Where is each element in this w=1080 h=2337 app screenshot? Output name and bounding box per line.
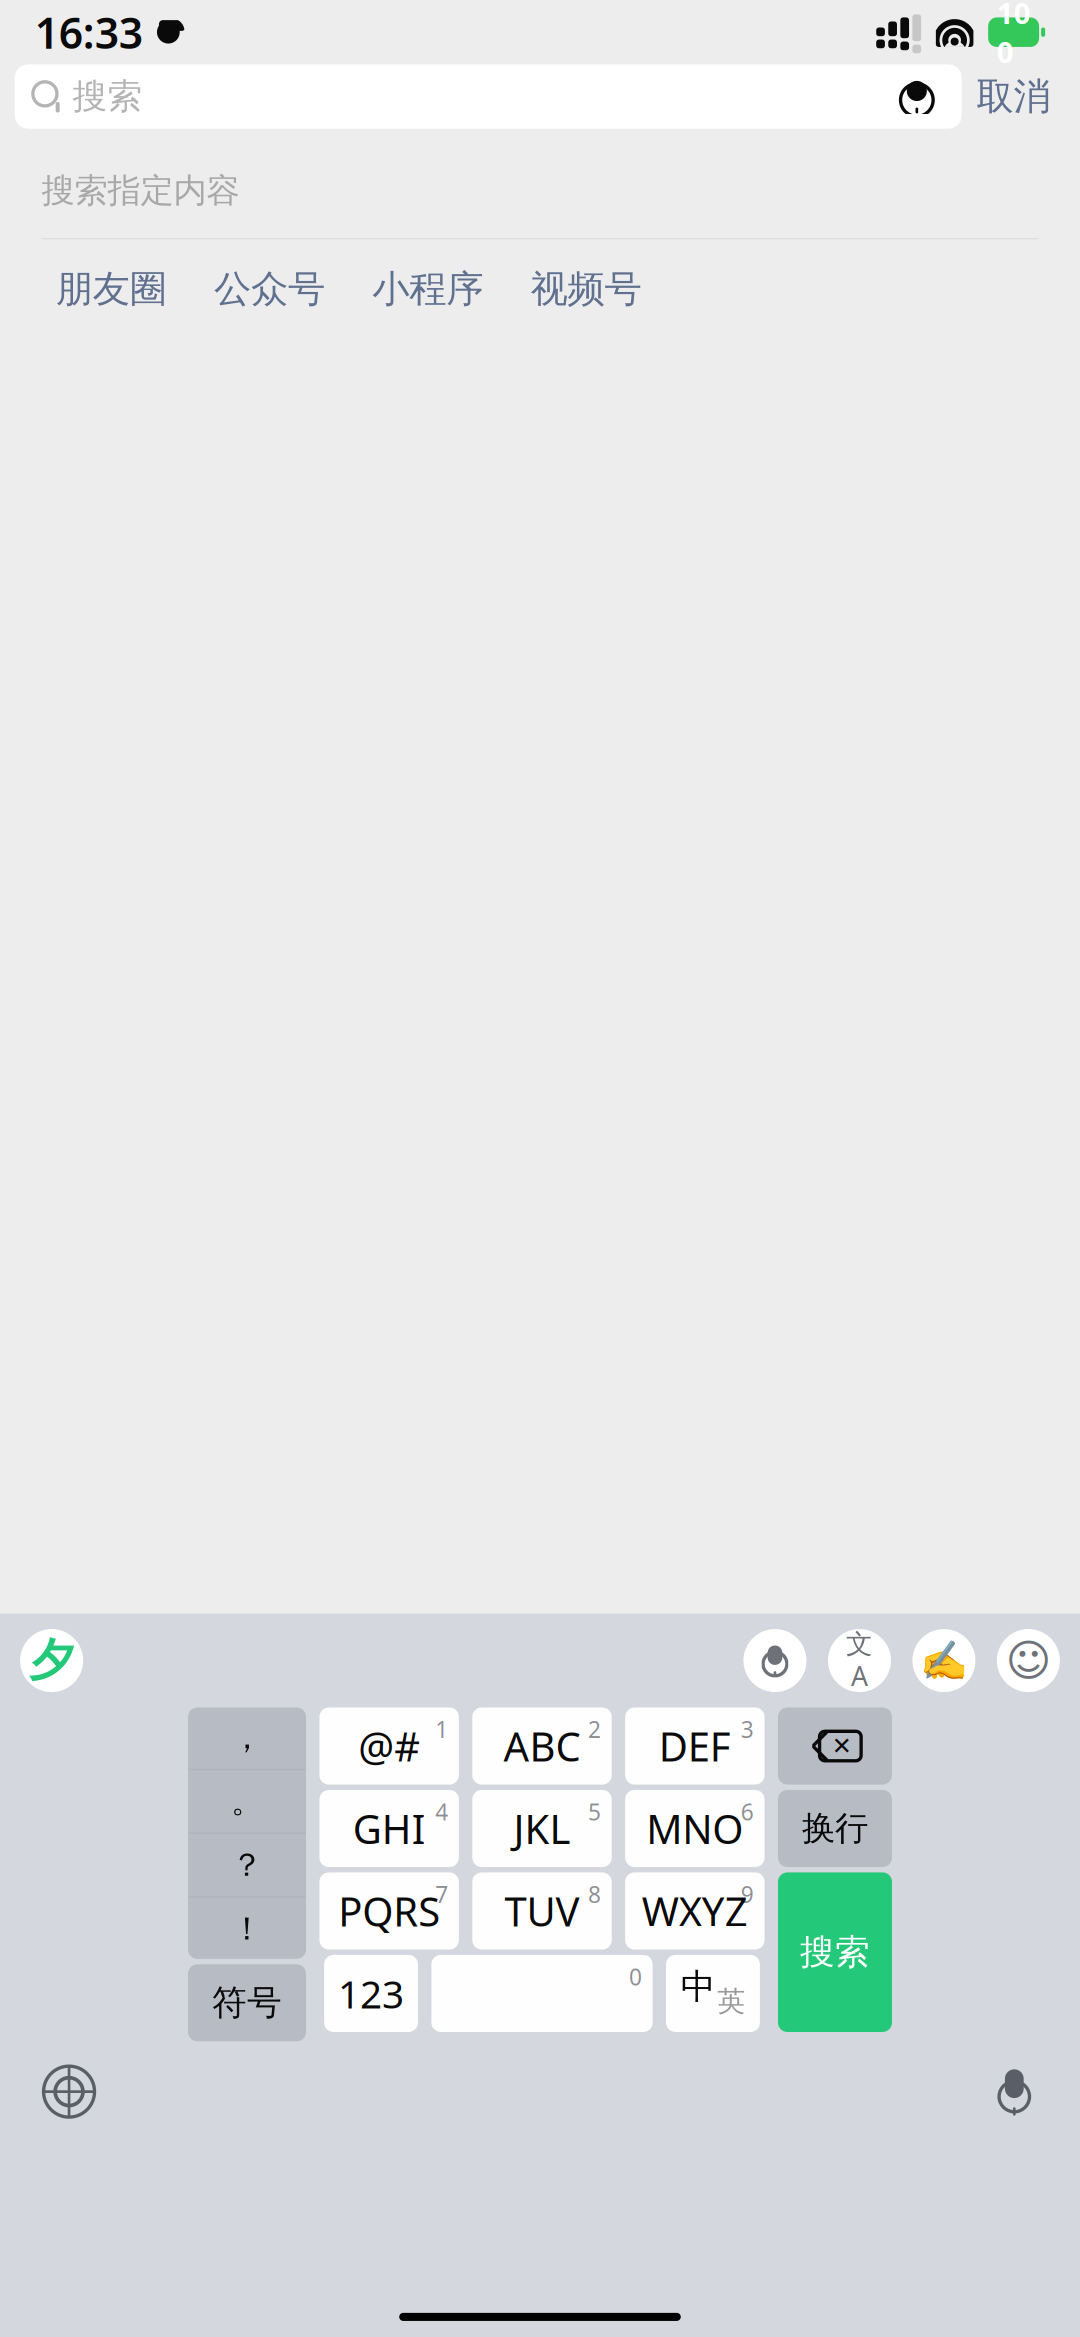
button[interactable]: 表情 bbox=[997, 1629, 1060, 1692]
staticText: 文 bbox=[846, 1628, 873, 1661]
staticText: ， bbox=[231, 1718, 263, 1757]
staticText: 搜索指定内容 bbox=[42, 170, 240, 211]
staticText: ？ bbox=[231, 1845, 263, 1885]
button[interactable]: 。 bbox=[188, 1770, 306, 1832]
staticText: DEF bbox=[659, 1719, 731, 1773]
button[interactable]: 切换键盘 bbox=[39, 2061, 99, 2122]
button[interactable]: 2 bbox=[472, 1707, 612, 1785]
button[interactable]: 4 bbox=[319, 1790, 459, 1867]
button[interactable]: 8 bbox=[472, 1872, 612, 1949]
button[interactable]: 朋友圈 bbox=[32, 258, 190, 320]
button[interactable]: 语音输入 bbox=[743, 1629, 806, 1692]
button[interactable]: 小程序 bbox=[349, 258, 507, 320]
button[interactable]: 空格 bbox=[431, 1955, 653, 2032]
button[interactable]: 换行 bbox=[778, 1790, 892, 1867]
staticText: 0 bbox=[629, 1962, 642, 1992]
button[interactable]: 视频号 bbox=[507, 258, 665, 320]
staticText: 。 bbox=[231, 1782, 263, 1821]
staticText: TUV bbox=[504, 1884, 579, 1937]
staticText: 4 bbox=[435, 1797, 448, 1827]
button[interactable]: ， bbox=[188, 1706, 306, 1769]
button[interactable]: 6 bbox=[625, 1790, 764, 1867]
staticText: @# bbox=[358, 1719, 420, 1773]
button[interactable]: ？ bbox=[188, 1834, 306, 1896]
staticText: 3 bbox=[741, 1714, 754, 1744]
staticText: 5 bbox=[588, 1797, 601, 1827]
staticText: 中 bbox=[681, 1965, 716, 2008]
staticText: 公众号 bbox=[214, 266, 325, 312]
staticText: 搜索 bbox=[800, 1931, 870, 1973]
button[interactable]: 输入法 bbox=[20, 1629, 83, 1692]
button[interactable]: 7 bbox=[319, 1872, 459, 1949]
staticText: 小程序 bbox=[372, 266, 483, 312]
staticText: 9 bbox=[741, 1879, 754, 1909]
button[interactable]: 123 bbox=[324, 1955, 418, 2032]
button[interactable]: 翻译 bbox=[828, 1628, 891, 1693]
staticText: 16:33 bbox=[35, 4, 143, 60]
button[interactable]: 符号 bbox=[188, 1964, 306, 2041]
staticText: 100 bbox=[997, 0, 1031, 71]
staticText: 英 bbox=[717, 1984, 745, 2019]
staticText: 换行 bbox=[802, 1808, 868, 1849]
button[interactable]: 取消 bbox=[962, 64, 1065, 129]
staticText: JKL bbox=[513, 1802, 570, 1855]
staticText: 取消 bbox=[976, 74, 1050, 119]
staticText: 朋友圈 bbox=[56, 266, 167, 312]
button[interactable]: 删除 bbox=[778, 1707, 892, 1785]
staticText: WXYZ bbox=[642, 1884, 748, 1937]
button[interactable]: 9 bbox=[625, 1872, 764, 1949]
staticText: 视频号 bbox=[530, 266, 641, 312]
staticText: 1 bbox=[435, 1714, 448, 1744]
staticText: ☺ bbox=[1005, 1636, 1051, 1685]
button[interactable]: 手写 bbox=[912, 1629, 975, 1692]
staticText: ✕ bbox=[832, 1732, 852, 1760]
staticText: GHI bbox=[353, 1802, 426, 1855]
staticText: 8 bbox=[588, 1879, 601, 1909]
staticText: 6 bbox=[741, 1797, 754, 1827]
button[interactable]: 1 bbox=[319, 1707, 459, 1785]
staticText: ！ bbox=[231, 1909, 263, 1948]
staticText: PQRS bbox=[338, 1884, 440, 1937]
staticText: 搜索 bbox=[72, 75, 142, 118]
staticText: 夕 bbox=[29, 1633, 74, 1688]
staticText: ABC bbox=[503, 1719, 580, 1773]
staticText: 7 bbox=[435, 1879, 448, 1909]
staticText: ✍ bbox=[920, 1638, 968, 1683]
button[interactable]: 3 bbox=[625, 1707, 764, 1785]
button[interactable]: 5 bbox=[472, 1790, 612, 1867]
button[interactable]: 搜索 bbox=[15, 64, 962, 129]
staticText: A bbox=[851, 1658, 868, 1693]
button[interactable]: 中英文切换 bbox=[666, 1955, 760, 2032]
button[interactable]: 公众号 bbox=[190, 258, 349, 320]
button[interactable]: 搜索 bbox=[778, 1872, 892, 2032]
button[interactable]: ！ bbox=[188, 1898, 306, 1960]
staticText: MNO bbox=[646, 1802, 743, 1855]
staticText: 符号 bbox=[212, 1981, 282, 2024]
button[interactable]: 听写 bbox=[987, 2061, 1041, 2122]
staticText: 123 bbox=[338, 1968, 404, 2019]
staticText: 2 bbox=[588, 1714, 601, 1744]
